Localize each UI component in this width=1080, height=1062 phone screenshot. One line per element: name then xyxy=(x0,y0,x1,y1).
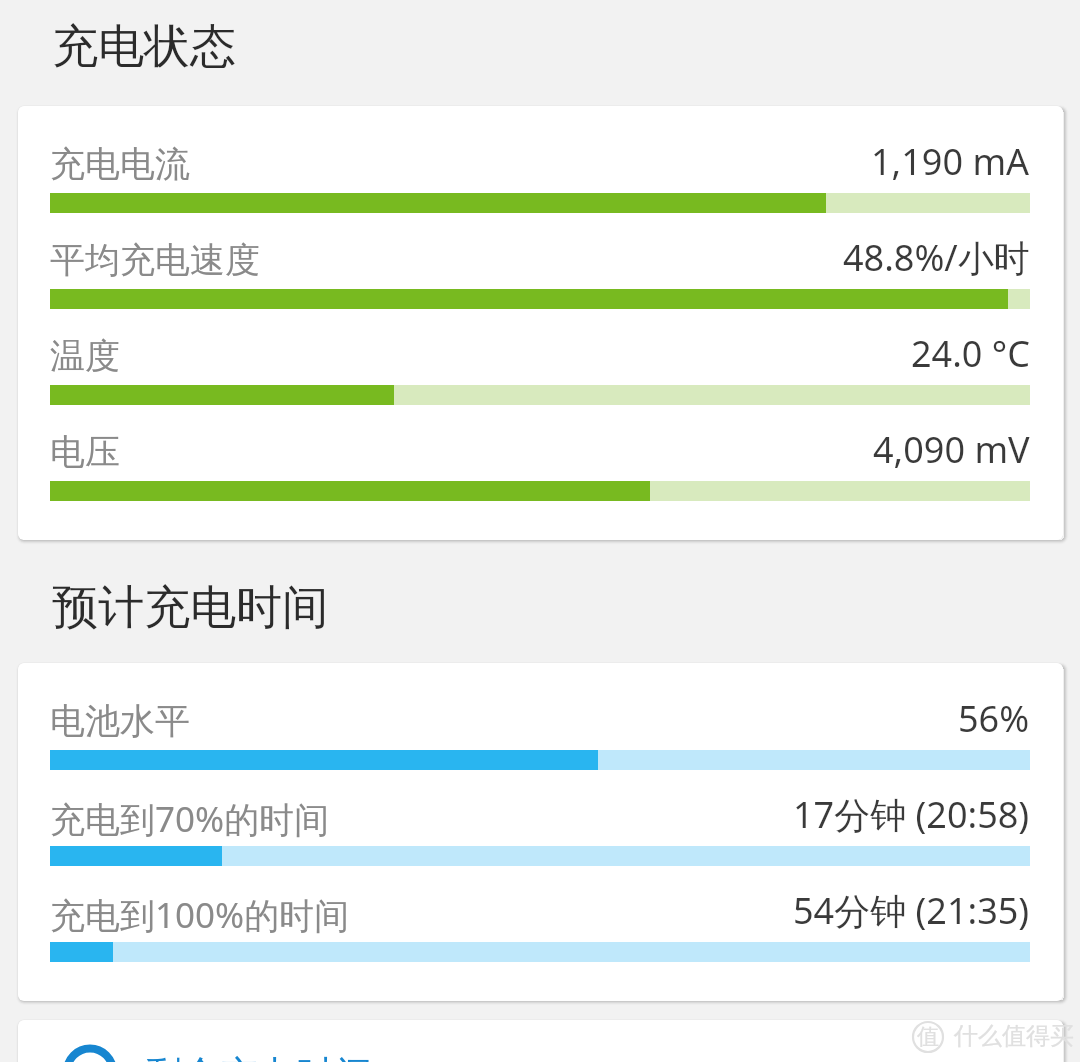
button[interactable]: 电池水平 xyxy=(18,663,1063,1001)
staticText: 24.0 °C xyxy=(911,329,1030,377)
staticText: 什么值得买 xyxy=(954,1021,1074,1051)
staticText: 温度 xyxy=(50,334,120,378)
staticText: 54分钟 (21:35) xyxy=(793,886,1030,934)
staticText: 平均充电速度 xyxy=(50,238,260,282)
staticText: 56% xyxy=(958,694,1030,742)
staticText: 充电状态 xyxy=(52,18,236,76)
button[interactable]: 剩余充电时间 xyxy=(18,1020,1063,1062)
staticText: 48.8%/小时 xyxy=(843,233,1030,281)
staticText: 剩余充电时间 xyxy=(144,1051,372,1062)
staticText: 值 xyxy=(917,1023,939,1051)
button[interactable]: 充电电流 xyxy=(18,106,1063,540)
staticText: 预计充电时间 xyxy=(52,579,328,637)
staticText: 充电电流 xyxy=(50,142,190,186)
staticText: 充电到70%的时间 xyxy=(50,795,330,843)
staticText: 17分钟 (20:58) xyxy=(793,790,1030,838)
staticText: 电池水平 xyxy=(50,699,190,743)
staticText: 4,090 mV xyxy=(873,425,1030,473)
staticText: 充电到100%的时间 xyxy=(50,891,350,939)
staticText: 1,190 mA xyxy=(871,137,1030,185)
staticText: 电压 xyxy=(50,430,120,474)
